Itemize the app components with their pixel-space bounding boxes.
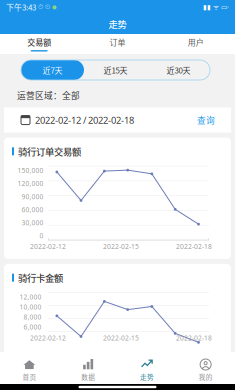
staticText: 2022-02-18: [176, 333, 212, 342]
staticText: 150,000: [17, 166, 43, 175]
staticText: 近7天: [42, 64, 62, 76]
staticText: 0: [39, 231, 43, 240]
staticText: 骑行卡金额: [18, 271, 63, 284]
staticText: 2022-02-12: [30, 333, 66, 342]
staticText: 12,000: [19, 292, 41, 301]
button[interactable]: 首页: [0, 352, 59, 384]
staticText: 订单: [109, 36, 125, 48]
staticText: ▭·: [221, 3, 229, 11]
button[interactable]: 数据: [59, 352, 118, 384]
staticText: 走势: [108, 17, 126, 31]
button[interactable]: 近15天: [84, 60, 147, 80]
staticText: 2022-02-12 / 2022-02-18: [35, 114, 134, 126]
staticText: 6,000: [23, 323, 41, 331]
button[interactable]: 交易额: [0, 34, 78, 54]
staticText: 2022-02-18: [176, 242, 212, 251]
staticText: 走势: [140, 372, 154, 382]
staticText: 60,000: [21, 205, 43, 214]
staticText: 用户: [188, 36, 204, 48]
button[interactable]: 近7天: [21, 60, 84, 80]
staticText: 下午3:43: [6, 1, 36, 13]
button[interactable]: 订单: [78, 34, 157, 54]
staticText: 2022-02-15: [103, 242, 139, 251]
staticText: 近15天: [103, 64, 127, 76]
staticText: 交易额: [27, 36, 51, 48]
staticText: ⏱ ⏲: [38, 4, 50, 10]
staticText: 8,000: [23, 312, 41, 321]
staticText: 30,000: [21, 218, 43, 227]
staticText: 数据: [81, 372, 95, 382]
button[interactable]: 走势: [117, 352, 176, 384]
staticText: 骑行订单交易额: [18, 144, 81, 158]
staticText: 我的: [199, 372, 213, 382]
staticText: 120,000: [17, 179, 43, 188]
button[interactable]: 用户: [157, 34, 235, 54]
staticText: 首页: [22, 372, 36, 382]
button[interactable]: 近30天: [147, 60, 210, 80]
button[interactable]: 查询: [194, 114, 218, 126]
staticText: 查询: [197, 114, 215, 126]
staticText: ▮▮ ᯤ: [203, 3, 219, 11]
staticText: ●: [52, 4, 57, 10]
staticText: 近30天: [166, 64, 190, 76]
staticText: 10,000: [19, 302, 41, 311]
staticText: 2022-02-12: [30, 242, 66, 251]
staticText: 90,000: [21, 192, 43, 201]
staticText: 运营区域：全部: [17, 89, 80, 101]
staticText: 2022-02-15: [103, 333, 139, 342]
button[interactable]: 我的: [176, 352, 235, 384]
